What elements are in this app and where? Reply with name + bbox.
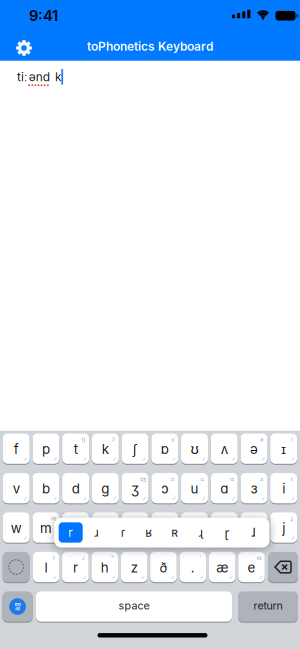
- staticText: ɑː: [230, 476, 234, 482]
- staticText: space: [118, 599, 149, 612]
- staticText: return: [253, 599, 282, 612]
- staticText: ɽ: [224, 524, 229, 540]
- staticText: dʒ: [140, 476, 146, 482]
- button[interactable]: Settings: [12, 36, 36, 60]
- button[interactable]: f: [3, 433, 30, 464]
- staticText: z: [131, 560, 138, 575]
- staticText: ': [200, 555, 202, 561]
- staticText: ʁ: [145, 525, 152, 540]
- staticText: toPhonetics Keyboard: [87, 39, 213, 54]
- button[interactable]: m: [32, 512, 59, 543]
- button[interactable]: ʃ: [122, 433, 148, 464]
- button[interactable]: l: [33, 552, 59, 582]
- button[interactable]: z: [121, 552, 147, 582]
- button[interactable]: ɾ: [111, 522, 135, 543]
- button[interactable]: d: [62, 473, 89, 503]
- button[interactable]: Delete: [268, 552, 298, 582]
- staticText: uː: [200, 476, 204, 482]
- staticText: ʰ: [111, 555, 113, 561]
- button[interactable]: Key: [122, 512, 148, 543]
- staticText: æ: [216, 560, 228, 575]
- button[interactable]: ɺ: [241, 522, 265, 543]
- button[interactable]: .: [180, 552, 206, 582]
- button[interactable]: ɔ: [151, 473, 178, 503]
- button[interactable]: v: [3, 473, 30, 503]
- button[interactable]: ʁ: [137, 522, 161, 543]
- staticText: h: [101, 560, 109, 575]
- button[interactable]: Key: [92, 512, 119, 543]
- staticText: r: [68, 525, 73, 540]
- staticText: ɔː: [171, 476, 175, 482]
- staticText: w: [11, 520, 22, 536]
- staticText: ɹ: [82, 555, 84, 561]
- staticText: ɱ: [51, 515, 56, 522]
- staticText: ʝ: [291, 515, 293, 522]
- button[interactable]: r: [62, 552, 89, 582]
- staticText: ɪ: [281, 441, 286, 457]
- staticText: ɜː: [260, 476, 264, 482]
- button[interactable]: ʊ: [181, 433, 208, 464]
- staticText: ð: [159, 560, 167, 575]
- button[interactable]: t: [62, 433, 89, 464]
- button[interactable]: ʌ: [211, 433, 238, 464]
- button[interactable]: Diacritic: [3, 552, 30, 582]
- button[interactable]: Key: [240, 512, 267, 543]
- staticText: ʃ: [133, 441, 138, 457]
- staticText: eɪ: [257, 555, 262, 561]
- button[interactable]: k: [92, 433, 119, 464]
- staticText: p: [42, 441, 50, 457]
- button[interactable]: g: [92, 473, 119, 503]
- button[interactable]: p: [32, 433, 59, 464]
- button[interactable]: ɽ: [215, 522, 239, 543]
- staticText: g: [101, 481, 109, 496]
- button[interactable]: Key: [181, 512, 208, 543]
- staticText: ɔ̃: [171, 436, 174, 443]
- button[interactable]: Key: [211, 512, 238, 543]
- button[interactable]: space: [36, 591, 232, 622]
- button[interactable]: return: [238, 591, 298, 622]
- button[interactable]: ɪ: [270, 433, 297, 464]
- staticText: ɑ: [220, 481, 228, 496]
- button[interactable]: i: [270, 473, 297, 503]
- button[interactable]: Key: [151, 512, 178, 543]
- button[interactable]: Key: [62, 512, 89, 543]
- staticText: ɺ: [251, 525, 255, 540]
- staticText: l: [45, 560, 48, 575]
- button[interactable]: r: [59, 522, 83, 543]
- button[interactable]: j: [270, 512, 297, 543]
- button[interactable]: ɹ: [85, 522, 109, 543]
- staticText: ɫ: [53, 555, 54, 561]
- staticText: tiː: [17, 70, 27, 84]
- staticText: f: [14, 441, 19, 457]
- button[interactable]: ɻ: [189, 522, 213, 543]
- staticText: k: [55, 70, 62, 84]
- button[interactable]: æ: [209, 552, 235, 582]
- button[interactable]: ʀ: [163, 522, 187, 543]
- staticText: j: [282, 520, 285, 536]
- button[interactable]: ɑ: [211, 473, 238, 503]
- button[interactable]: w: [3, 512, 30, 543]
- staticText: .: [191, 560, 195, 575]
- button[interactable]: ɜ: [240, 473, 267, 503]
- staticText: tʃ: [82, 436, 86, 443]
- staticText: u: [190, 481, 198, 496]
- button[interactable]: ð: [150, 552, 177, 582]
- button[interactable]: ʒ: [122, 473, 148, 503]
- button[interactable]: u: [181, 473, 208, 503]
- button[interactable]: h: [91, 552, 118, 582]
- staticText: ənd: [29, 70, 50, 84]
- staticText: ɚ: [260, 436, 264, 443]
- staticText: v: [13, 481, 20, 496]
- staticText: iː: [291, 476, 293, 482]
- staticText: ə: [250, 441, 258, 457]
- button[interactable]: ɒ: [151, 433, 178, 464]
- staticText: ɻ: [198, 525, 203, 540]
- staticText: e: [247, 560, 255, 575]
- staticText: d: [72, 481, 80, 496]
- staticText: b: [42, 481, 50, 496]
- button[interactable]: Next keyboard: [3, 591, 33, 622]
- button[interactable]: ə: [240, 433, 267, 464]
- button[interactable]: b: [32, 473, 59, 503]
- staticText: 9:41: [29, 7, 58, 24]
- button[interactable]: e: [238, 552, 265, 582]
